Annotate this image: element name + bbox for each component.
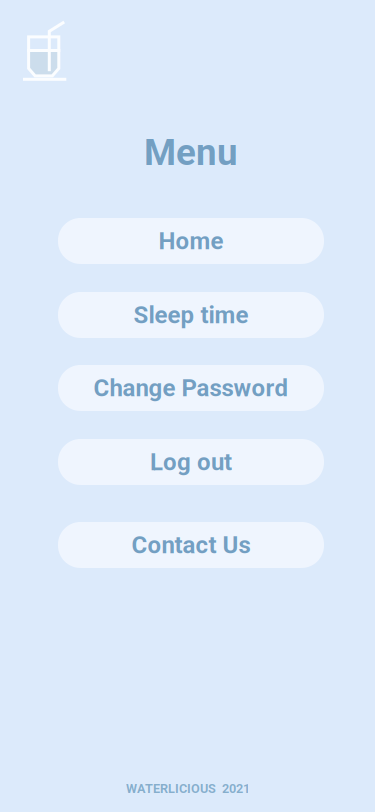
button[interactable]: Change Password bbox=[58, 365, 324, 411]
staticText: Contact Us bbox=[131, 531, 250, 559]
staticText: Home bbox=[158, 227, 223, 255]
staticText: Change Password bbox=[93, 374, 288, 402]
button[interactable]: Waterlicious home bbox=[21, 20, 67, 82]
button[interactable]: Contact Us bbox=[58, 522, 324, 568]
staticText: WATERLICIOUS 2021 bbox=[126, 781, 250, 796]
staticText: Log out bbox=[150, 448, 232, 476]
button[interactable]: Log out bbox=[58, 439, 324, 485]
staticText: Sleep time bbox=[133, 301, 248, 329]
button[interactable]: Sleep time bbox=[58, 292, 324, 338]
staticText: Menu bbox=[144, 131, 238, 174]
button[interactable]: Home bbox=[58, 218, 324, 264]
